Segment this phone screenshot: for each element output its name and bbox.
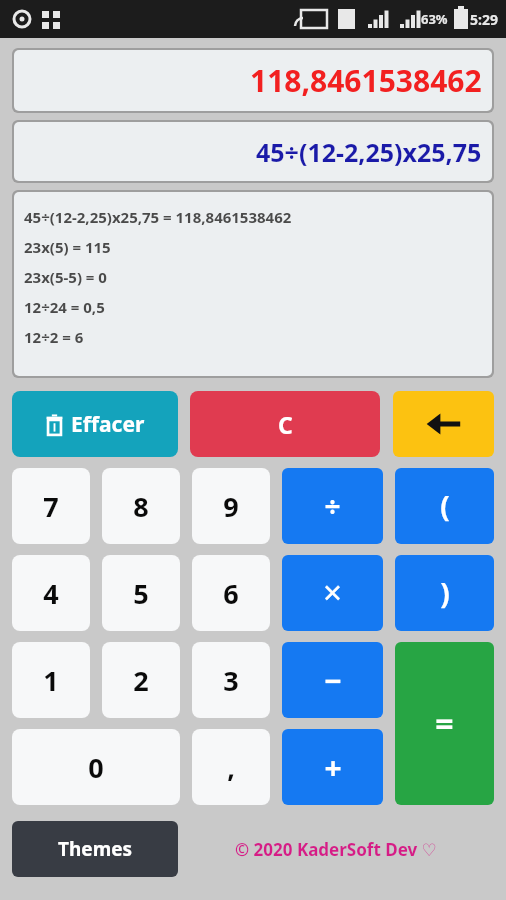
staticText: − bbox=[324, 660, 342, 701]
staticText: , bbox=[227, 749, 235, 786]
staticText: 1 bbox=[43, 662, 59, 699]
staticText: 4 bbox=[43, 575, 59, 612]
button[interactable]: 0 bbox=[12, 729, 180, 805]
button[interactable]: − bbox=[282, 642, 383, 718]
button[interactable]: 1 bbox=[12, 642, 90, 718]
staticText: = bbox=[435, 702, 454, 746]
button[interactable]: 7 bbox=[12, 468, 90, 544]
staticText: 5 bbox=[133, 575, 149, 612]
button[interactable]: 3 bbox=[192, 642, 270, 718]
button[interactable]: ) bbox=[395, 555, 494, 631]
button[interactable]: ( bbox=[395, 468, 494, 544]
staticText: 7 bbox=[43, 488, 59, 525]
button[interactable]: ✕ bbox=[282, 555, 383, 631]
staticText: ) bbox=[440, 574, 450, 612]
button[interactable]: 9 bbox=[192, 468, 270, 544]
staticText: + bbox=[324, 747, 342, 788]
staticText: 23x(5) = 115 bbox=[24, 237, 111, 257]
button[interactable]: 4 bbox=[12, 555, 90, 631]
staticText: 45÷(12-2,25)x25,75 = 118,8461538462 bbox=[24, 207, 292, 227]
staticText: Themes bbox=[58, 836, 133, 862]
button[interactable]: , bbox=[192, 729, 270, 805]
staticText: ( bbox=[440, 487, 450, 525]
staticText: 3 bbox=[223, 662, 239, 699]
button[interactable]: = bbox=[395, 642, 494, 805]
button[interactable]: Backspace bbox=[393, 391, 494, 457]
staticText: 15:29 bbox=[462, 10, 498, 29]
staticText: C bbox=[278, 409, 293, 440]
staticText: 45÷(12-2,25)x25,75 bbox=[256, 135, 482, 169]
button[interactable]: + bbox=[282, 729, 383, 805]
staticText: ÷ bbox=[324, 487, 341, 525]
staticText: 0 bbox=[88, 749, 104, 786]
staticText: 8 bbox=[133, 488, 149, 525]
button[interactable]: Themes bbox=[12, 821, 178, 877]
staticText: 12÷2 = 6 bbox=[24, 327, 84, 347]
staticText: 2 bbox=[133, 662, 149, 699]
button[interactable]: 2 bbox=[102, 642, 180, 718]
staticText: 118,8461538462 bbox=[250, 60, 482, 101]
button[interactable]: C bbox=[190, 391, 380, 457]
button[interactable]: 5 bbox=[102, 555, 180, 631]
button[interactable]: 6 bbox=[192, 555, 270, 631]
staticText: 9 bbox=[223, 488, 239, 525]
staticText: Effacer bbox=[71, 410, 145, 439]
button[interactable]: 8 bbox=[102, 468, 180, 544]
staticText: ✕ bbox=[322, 579, 343, 608]
staticText: 6 bbox=[223, 575, 239, 612]
button[interactable]: ÷ bbox=[282, 468, 383, 544]
staticText: 63% bbox=[421, 10, 448, 28]
staticText: © 2020 KaderSoft Dev ♡ bbox=[235, 838, 437, 861]
button[interactable]: Effacer bbox=[12, 391, 178, 457]
staticText: 12÷24 = 0,5 bbox=[24, 297, 105, 317]
staticText: 23x(5-5) = 0 bbox=[24, 267, 107, 287]
